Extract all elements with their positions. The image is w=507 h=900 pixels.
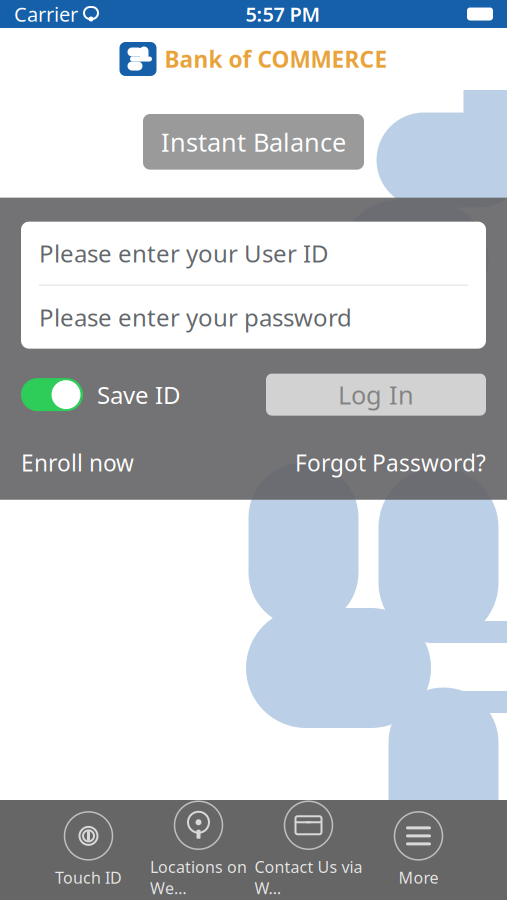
button[interactable]: Touch ID [33, 812, 143, 888]
button[interactable]: Save ID [21, 378, 181, 411]
staticText: Locations on We… [150, 856, 247, 899]
staticText: Please enter your User ID [39, 237, 329, 269]
staticText: Carrier [14, 1, 78, 27]
button[interactable]: Log In [266, 374, 486, 416]
staticText: 5:57 PM [245, 1, 320, 27]
staticText: Touch ID [55, 867, 122, 888]
staticText: Instant Balance [161, 125, 346, 159]
button[interactable]: More [363, 812, 473, 888]
button[interactable]: Enroll now [21, 448, 134, 478]
button[interactable]: Please enter your password [21, 286, 486, 349]
staticText: Forgot Password? [295, 448, 486, 478]
staticText: More [398, 867, 438, 888]
staticText: Save ID [97, 379, 181, 411]
staticText: Enroll now [21, 448, 134, 478]
button[interactable]: Instant Balance [143, 114, 364, 170]
button[interactable]: Please enter your User ID [21, 222, 486, 285]
staticText: Contact Us via W… [254, 856, 362, 899]
button[interactable]: Forgot Password? [295, 448, 486, 478]
staticText: Bank of COMMERCE [164, 44, 387, 74]
staticText: Please enter your password [39, 301, 352, 333]
button[interactable]: Contact Us via W… [253, 801, 363, 899]
button[interactable]: Locations on We… [143, 801, 253, 899]
staticText: Log In [338, 378, 414, 411]
